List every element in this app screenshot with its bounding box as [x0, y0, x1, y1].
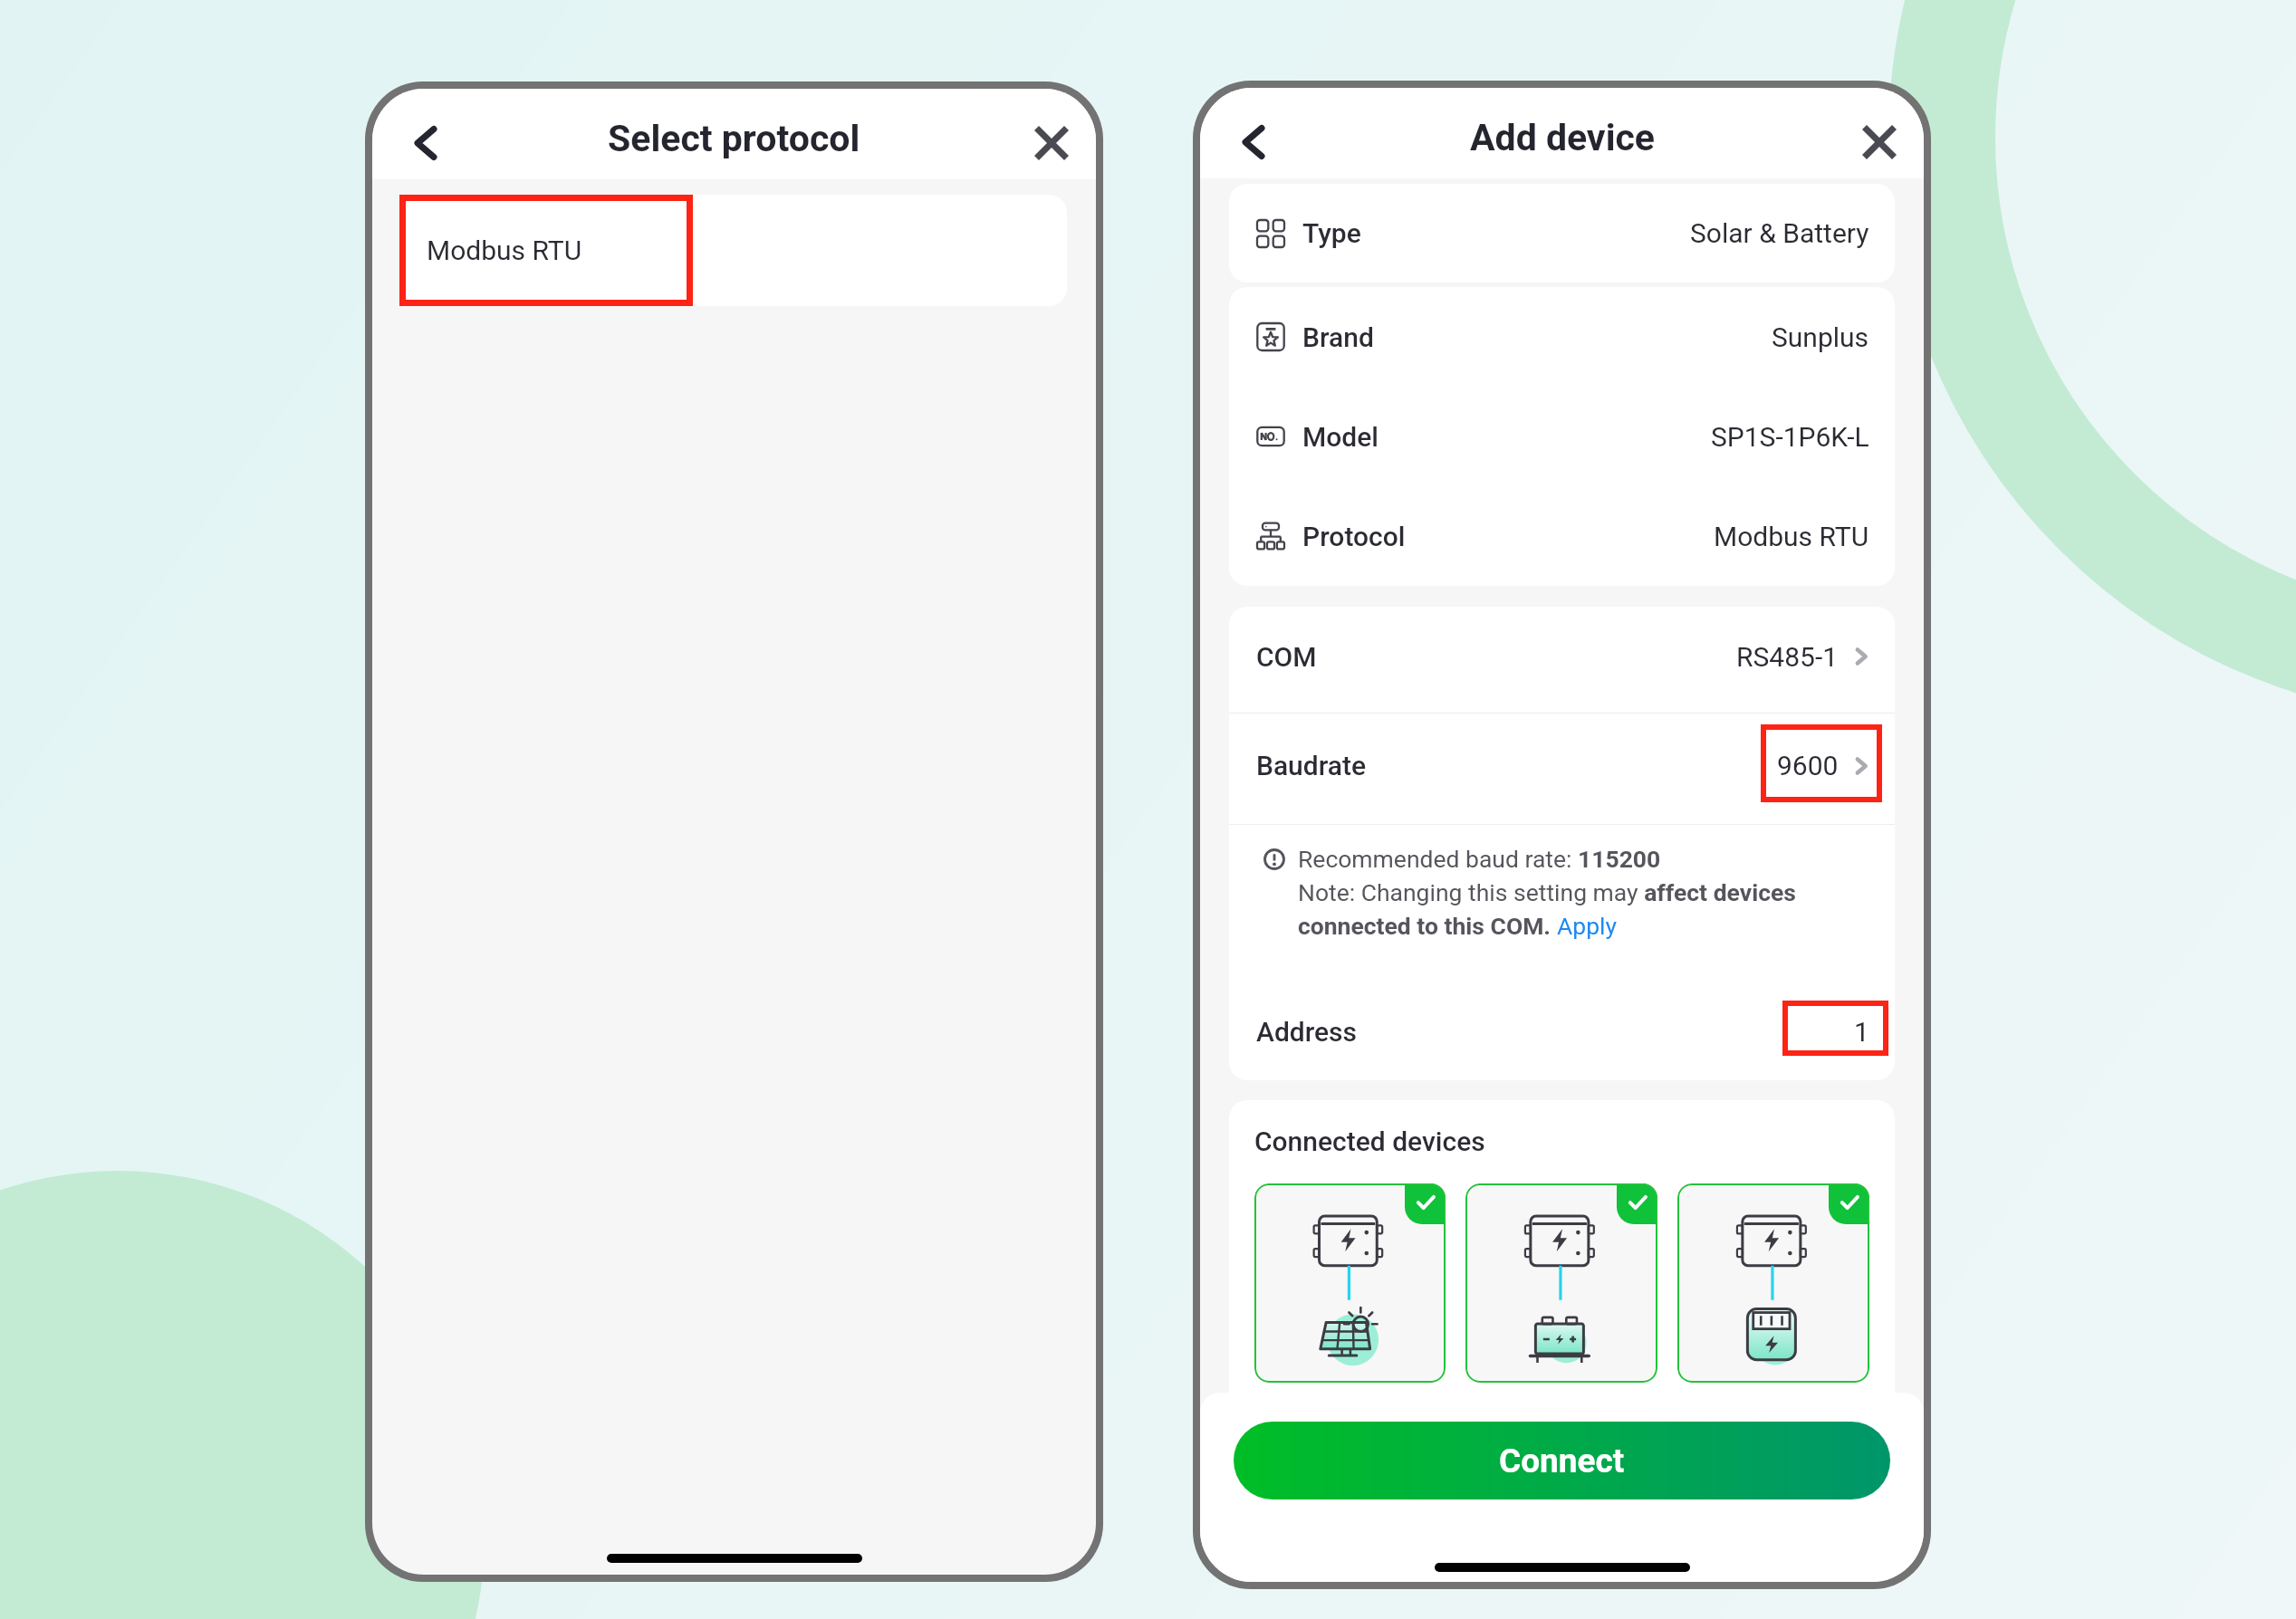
staticText: Add device: [1470, 116, 1655, 159]
staticText: Baudrate: [1256, 750, 1367, 781]
button[interactable]: Address: [1229, 982, 1895, 1080]
staticText: Address: [1256, 1016, 1357, 1048]
staticText: Connected devices: [1254, 1126, 1485, 1157]
button[interactable]: Close: [1023, 114, 1081, 172]
button[interactable]: Back: [397, 114, 455, 172]
button[interactable]: Inverter device: [1677, 1183, 1869, 1383]
staticText: Type: [1302, 217, 1361, 249]
staticText: Model: [1302, 421, 1379, 453]
button[interactable]: Type: [1229, 184, 1895, 283]
button[interactable]: Back: [1225, 113, 1282, 171]
staticText: SP1S-1P6K-L: [1711, 421, 1869, 453]
button[interactable]: Brand: [1229, 287, 1895, 387]
staticText: Connect: [1499, 1442, 1625, 1480]
staticText: 1: [1854, 1016, 1869, 1048]
staticText: Note: Changing this setting may affect d…: [1298, 878, 1796, 906]
button[interactable]: Modbus RTU: [399, 195, 1067, 306]
button[interactable]: Battery device: [1465, 1183, 1657, 1383]
button[interactable]: Solar panel device: [1254, 1183, 1446, 1383]
button[interactable]: Baudrate: [1256, 714, 1873, 818]
staticText: 9600: [1777, 750, 1839, 781]
button[interactable]: Model: [1229, 387, 1895, 486]
button[interactable]: Close: [1850, 113, 1908, 171]
button[interactable]: Protocol: [1229, 486, 1895, 586]
button[interactable]: Apply: [1557, 912, 1618, 940]
staticText: Modbus RTU: [1714, 521, 1869, 552]
staticText: Recommended baud rate: 115200: [1298, 845, 1661, 873]
staticText: RS485-1: [1736, 641, 1839, 673]
staticText: connected to this COM.: [1298, 912, 1557, 940]
button[interactable]: Connect: [1234, 1422, 1890, 1499]
staticText: Select protocol: [608, 117, 860, 160]
staticText: Sunplus: [1772, 321, 1869, 353]
staticText: Protocol: [1302, 521, 1406, 552]
staticText: Modbus RTU: [427, 235, 582, 266]
button[interactable]: COM: [1256, 607, 1873, 706]
staticText: Solar & Battery: [1690, 217, 1869, 249]
staticText: COM: [1256, 641, 1317, 673]
staticText: Brand: [1302, 321, 1374, 353]
